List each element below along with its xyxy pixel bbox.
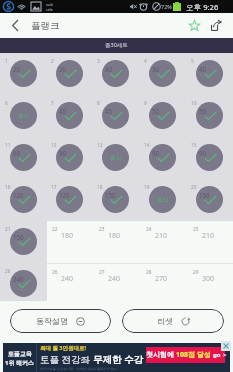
staticText: 50	[199, 107, 207, 115]
button[interactable]: 29	[188, 264, 233, 305]
staticText: 180	[105, 233, 116, 241]
staticText: 27	[99, 269, 105, 276]
staticText: 휴식	[110, 154, 122, 161]
button[interactable]: 리셋	[122, 309, 224, 333]
button[interactable]: 첫시험에	[146, 347, 225, 363]
button[interactable]: 16	[0, 179, 46, 221]
staticText: 첫시험에	[146, 350, 176, 360]
button[interactable]: 24	[141, 221, 188, 263]
staticText: 20	[59, 65, 67, 73]
button[interactable]: 9	[139, 95, 186, 137]
staticText: 23	[97, 226, 103, 233]
staticText: 210	[202, 231, 215, 241]
staticText: 23	[99, 226, 105, 233]
button[interactable]: 10	[186, 95, 233, 137]
staticText: 18	[97, 184, 103, 191]
button[interactable]: 22	[47, 221, 94, 263]
button[interactable]: 30	[186, 263, 233, 301]
button[interactable]: 26	[0, 263, 46, 301]
staticText: 30	[105, 65, 113, 73]
button[interactable]: 28	[141, 264, 188, 305]
button[interactable]: Favorite	[183, 13, 205, 38]
staticText: 30	[191, 268, 197, 275]
button[interactable]: Back	[0, 13, 29, 38]
button[interactable]: 6	[0, 95, 46, 137]
staticText: 28	[97, 268, 103, 275]
staticText: 300	[202, 274, 215, 284]
button[interactable]: 28	[92, 263, 139, 301]
button[interactable]: 18	[92, 179, 139, 221]
button[interactable]: 2	[46, 53, 92, 95]
staticText: 9	[144, 100, 147, 107]
staticText: 17	[51, 184, 57, 191]
staticText: 50	[152, 107, 160, 115]
button[interactable]: 4	[139, 53, 186, 95]
button[interactable]: 11	[0, 137, 46, 179]
staticText: 10	[191, 100, 197, 107]
staticText: 24	[144, 226, 150, 233]
staticText: 120	[59, 191, 70, 199]
staticText: 무제한 수강	[93, 353, 143, 366]
staticText: 240	[59, 275, 70, 283]
button[interactable]: 21	[0, 221, 46, 263]
button[interactable]: 26	[47, 264, 94, 305]
staticText: 108점 달성	[176, 350, 211, 360]
staticText: 29	[144, 268, 150, 275]
button[interactable]: 12	[46, 137, 92, 179]
staticText: 150	[199, 191, 210, 199]
staticText: 7	[51, 100, 54, 107]
staticText: 27	[51, 268, 57, 275]
button[interactable]: Share	[205, 13, 227, 38]
button[interactable]: 1	[0, 53, 46, 95]
staticText: 45	[105, 107, 113, 115]
button[interactable]: 27	[94, 264, 141, 305]
staticText: 90	[152, 149, 160, 157]
button[interactable]: 5	[186, 53, 233, 95]
staticText: 토플 전강좌	[40, 353, 93, 366]
button[interactable]: 20	[186, 179, 233, 221]
button[interactable]: 7	[46, 95, 92, 137]
staticText: 5	[191, 58, 194, 65]
staticText: 20	[191, 184, 197, 191]
staticText: >	[223, 351, 225, 359]
button[interactable]: 15	[186, 137, 233, 179]
button[interactable]: 27	[46, 263, 92, 301]
staticText: 120	[13, 191, 24, 199]
staticText: 30	[152, 65, 160, 73]
staticText: sub	[46, 2, 53, 7]
staticText: 300	[152, 275, 163, 283]
button[interactable]: 토플교육	[3, 343, 230, 372]
staticText: 해커스토플 수강생 기준 · 자세한 내용은 홈페이지 참고	[40, 367, 117, 371]
staticText: 90	[59, 149, 67, 157]
button[interactable]: 23	[92, 221, 139, 263]
staticText: 210	[152, 233, 163, 241]
button[interactable]: 3	[92, 53, 139, 95]
button[interactable]: 23	[94, 221, 141, 263]
button[interactable]: 8	[92, 95, 139, 137]
button[interactable]: 동작설명	[10, 309, 111, 333]
staticText: 60	[13, 149, 21, 157]
staticText: 180	[108, 231, 121, 241]
staticText: 최대 월 3만원대로!	[40, 344, 87, 352]
button[interactable]: 22	[46, 221, 92, 263]
staticText: 240	[13, 275, 24, 283]
staticText: 16	[5, 184, 11, 191]
button[interactable]: 13	[92, 137, 139, 179]
staticText: 15	[191, 142, 197, 149]
button[interactable]: 24	[139, 221, 186, 263]
staticText: 90	[199, 149, 207, 157]
button[interactable]: 29	[139, 263, 186, 301]
staticText: 6	[5, 100, 8, 107]
staticText: 14	[144, 142, 150, 149]
button[interactable]: 19	[139, 179, 186, 221]
staticText: 휴식	[18, 112, 30, 119]
button[interactable]: 14	[139, 137, 186, 179]
button[interactable]: 25	[188, 221, 233, 263]
button[interactable]: Close ad	[221, 341, 231, 351]
button[interactable]: 17	[46, 179, 92, 221]
staticText: 240	[61, 274, 74, 284]
button[interactable]: 25	[186, 221, 233, 263]
staticText: 25	[191, 226, 197, 233]
staticText: 26	[5, 268, 11, 275]
staticText: 29	[193, 269, 199, 276]
